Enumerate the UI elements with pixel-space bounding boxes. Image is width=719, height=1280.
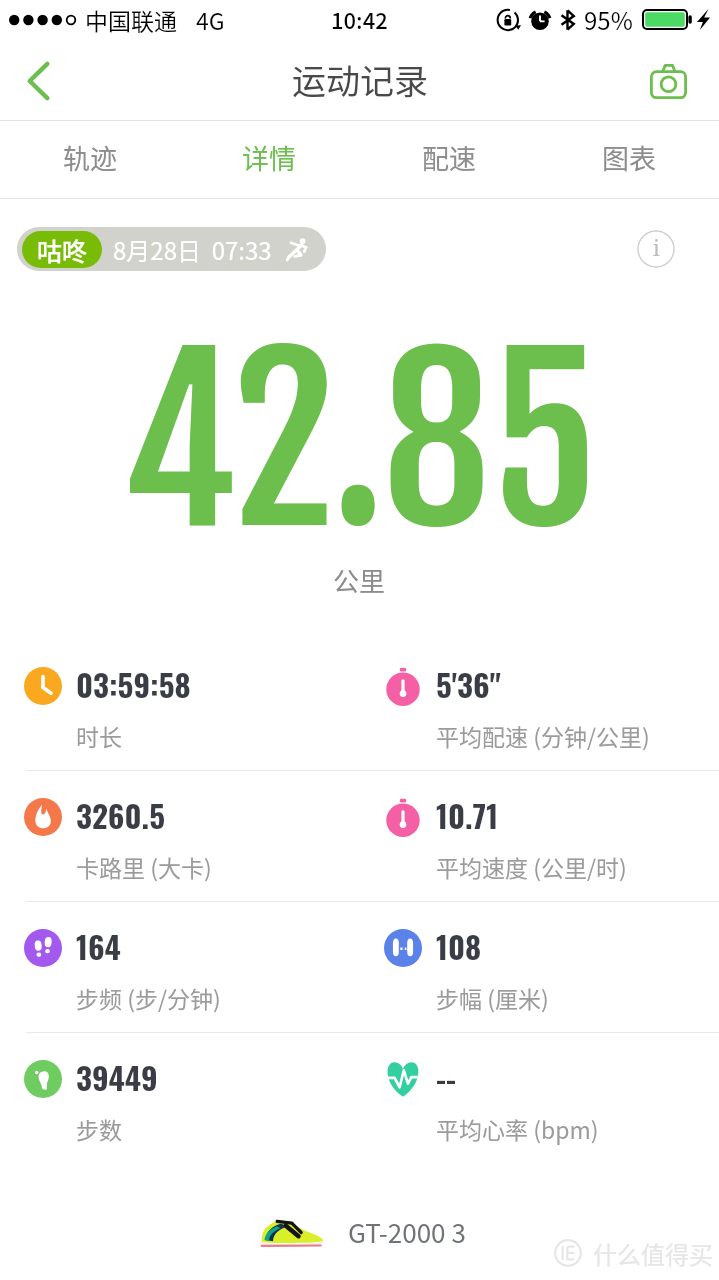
button[interactable]: 164 [0, 902, 359, 1032]
button[interactable]: 108 [359, 902, 719, 1032]
staticText: 10:42 [331, 3, 388, 35]
staticText: 39449 [76, 1054, 158, 1100]
staticText: 咕咚 [37, 232, 88, 268]
staticText: 步频 (步/分钟) [76, 981, 221, 1014]
staticText: 配速 [422, 138, 476, 177]
staticText: 卡路里 (大卡) [76, 850, 212, 883]
button[interactable]: 轨迹 [0, 121, 179, 199]
staticText: 3260.5 [76, 792, 165, 838]
staticText: 中国联通 [85, 3, 177, 36]
staticText: 平均心率 (bpm) [436, 1112, 599, 1145]
staticText: 步数 [76, 1112, 122, 1145]
staticText: 步幅 (厘米) [436, 981, 549, 1014]
staticText: 公里 [333, 561, 386, 599]
button[interactable]: 3260.5 [0, 771, 359, 901]
staticText: 图表 [602, 138, 656, 177]
button[interactable]: 39449 [0, 1033, 359, 1163]
button[interactable]: 03:59:58 [0, 640, 359, 770]
staticText: 95% [584, 2, 633, 37]
staticText: 108 [436, 923, 482, 969]
staticText: 平均配速 (分钟/公里) [436, 719, 650, 752]
staticText: 运动记录 [292, 55, 428, 104]
staticText: GT-2000 3 [348, 1213, 466, 1251]
button[interactable]: -- [359, 1033, 719, 1163]
button[interactable]: 图表 [539, 121, 719, 199]
button[interactable]: 咕咚 [17, 227, 326, 271]
staticText: 10.71 [436, 792, 499, 838]
button[interactable]: Back [4, 45, 72, 117]
staticText: 8月28日 07:33 [113, 232, 272, 267]
staticText: 03:59:58 [76, 661, 191, 707]
staticText: 轨迹 [63, 138, 117, 177]
button[interactable]: Info [637, 230, 675, 268]
staticText: 时长 [76, 719, 122, 752]
staticText: 164 [76, 923, 121, 969]
staticText: 详情 [242, 138, 296, 177]
button[interactable]: 配速 [359, 121, 539, 199]
button[interactable]: 5'36" [359, 640, 719, 770]
staticText: 平均速度 (公里/时) [436, 850, 627, 883]
button[interactable]: Camera [640, 53, 696, 109]
staticText: i [653, 234, 660, 263]
button[interactable]: 详情 [179, 121, 359, 199]
staticText: 5'36" [436, 661, 501, 707]
staticText: 42.85 [122, 307, 598, 578]
staticText: 4G [196, 3, 225, 36]
staticText: 什么值得买 [593, 1236, 713, 1271]
button[interactable]: GT-2000 3 [0, 1175, 719, 1280]
staticText: -- [436, 1054, 457, 1100]
button[interactable]: 10.71 [359, 771, 719, 901]
